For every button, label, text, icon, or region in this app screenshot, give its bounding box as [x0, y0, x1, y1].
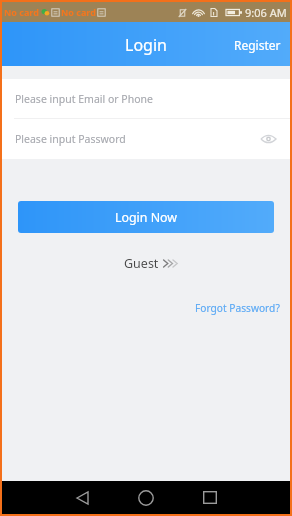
- button[interactable]: Show password: [257, 128, 279, 150]
- button[interactable]: Forgot Password?: [195, 301, 290, 315]
- staticText: Login Now: [115, 209, 178, 226]
- button[interactable]: Back: [50, 481, 114, 514]
- staticText: Login: [125, 34, 167, 56]
- staticText: No card: [4, 6, 39, 18]
- staticText: Register: [234, 37, 281, 53]
- button[interactable]: Register: [225, 26, 290, 64]
- staticText: No card: [61, 6, 96, 18]
- button[interactable]: Please input Password: [2, 119, 290, 159]
- button[interactable]: Guest: [124, 255, 178, 272]
- staticText: 9:06 AM: [245, 5, 287, 20]
- staticText: Guest: [124, 255, 159, 272]
- staticText: Forgot Password?: [195, 301, 280, 315]
- button[interactable]: Please input Email or Phone: [2, 79, 290, 118]
- staticText: Please input Email or Phone: [15, 92, 153, 106]
- button[interactable]: Home: [114, 481, 178, 514]
- staticText: Please input Password: [15, 132, 126, 146]
- button[interactable]: Recent apps: [178, 481, 242, 514]
- button[interactable]: Login Now: [18, 201, 274, 233]
